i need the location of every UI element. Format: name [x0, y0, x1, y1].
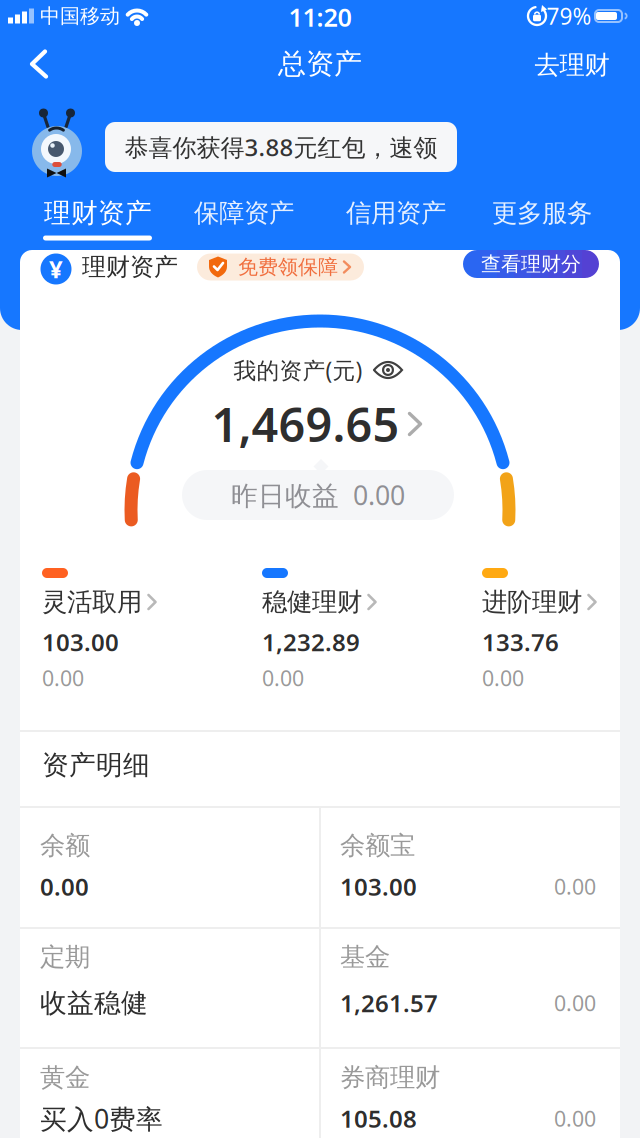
staticText: 1,261.57: [340, 987, 438, 1019]
button[interactable]: 返回: [30, 48, 48, 79]
staticText: 昨日收益 0.00: [231, 477, 405, 513]
staticText: 恭喜你获得3.88元红包，速领: [124, 131, 437, 163]
staticText: 总资产: [278, 47, 362, 81]
staticText: 去理财: [534, 49, 609, 80]
button[interactable]: 灵活取用: [40, 551, 220, 695]
button[interactable]: 进阶理财: [480, 551, 640, 695]
staticText: 1,232.89: [262, 626, 360, 658]
staticText: 稳健理财: [262, 586, 362, 617]
staticText: 0.00: [262, 664, 304, 692]
staticText: 定期: [40, 941, 90, 972]
button[interactable]: 定期: [20, 929, 320, 1047]
staticText: 0.00: [40, 871, 89, 902]
button[interactable]: 1,469.65: [211, 393, 420, 455]
staticText: 103.00: [42, 626, 119, 658]
button[interactable]: 稳健理财: [260, 551, 440, 695]
button[interactable]: 恭喜你获得3.88元红包，速领: [105, 122, 457, 172]
staticText: 0.00: [554, 1104, 596, 1133]
button[interactable]: 隐藏金额: [373, 360, 403, 380]
button[interactable]: 券商理财: [320, 1049, 620, 1138]
staticText: 我的资产(元): [233, 355, 362, 385]
staticText: 0.00: [42, 664, 84, 692]
staticText: 余额宝: [340, 830, 415, 861]
staticText: 103.00: [340, 871, 417, 902]
staticText: 进阶理财: [482, 586, 582, 617]
button[interactable]: 基金: [320, 929, 620, 1047]
button[interactable]: 去理财: [534, 49, 609, 80]
staticText: 0.00: [482, 664, 524, 692]
button[interactable]: 更多服务: [492, 197, 592, 228]
staticText: 0.00: [554, 872, 596, 901]
button[interactable]: 信用资产: [346, 197, 446, 228]
staticText: 更多服务: [492, 197, 592, 228]
staticText: ¥: [49, 253, 63, 285]
button[interactable]: 查看理财分: [463, 250, 599, 278]
staticText: 免费领保障: [238, 255, 338, 279]
staticText: 11:20: [288, 0, 351, 34]
button[interactable]: 余额宝: [320, 808, 620, 927]
button[interactable]: 理财资产: [44, 197, 152, 229]
button[interactable]: 免费领保障: [197, 253, 364, 280]
staticText: 资产明细: [42, 749, 150, 781]
staticText: 券商理财: [340, 1062, 440, 1093]
staticText: 收益稳健: [40, 987, 148, 1019]
staticText: 余额: [40, 830, 90, 861]
staticText: 105.08: [340, 1103, 417, 1134]
staticText: 灵活取用: [42, 586, 142, 617]
staticText: 理财资产: [44, 197, 152, 229]
button[interactable]: 黄金: [20, 1049, 320, 1138]
staticText: 保障资产: [194, 197, 294, 228]
staticText: 黄金: [40, 1062, 90, 1093]
staticText: 基金: [340, 941, 390, 972]
staticText: 查看理财分: [481, 252, 581, 276]
staticText: 中国移动: [40, 4, 120, 28]
staticText: 79%: [546, 1, 591, 31]
staticText: 买入0费率: [40, 1101, 163, 1136]
staticText: 理财资产: [82, 252, 178, 282]
staticText: 133.76: [482, 626, 559, 658]
button[interactable]: 保障资产: [194, 197, 294, 228]
button[interactable]: 余额: [20, 808, 320, 927]
staticText: 1,469.65: [211, 393, 399, 455]
staticText: 信用资产: [346, 197, 446, 228]
staticText: 0.00: [554, 989, 596, 1017]
